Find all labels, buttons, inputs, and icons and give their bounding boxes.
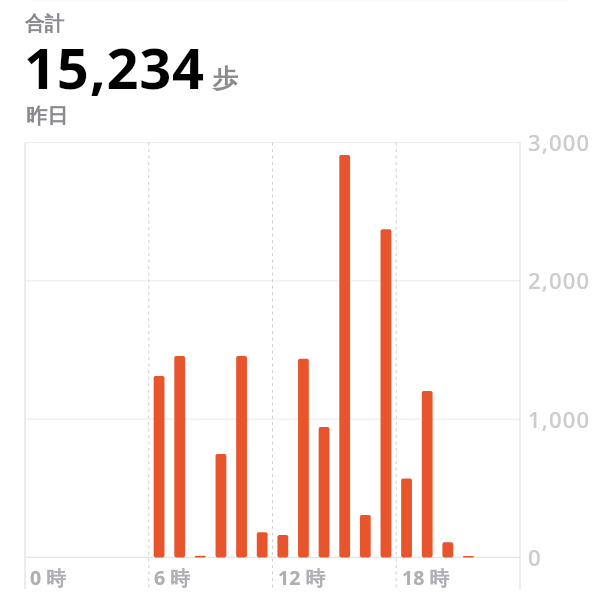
staticText: 0 時 — [30, 564, 66, 591]
staticText: 昨日 — [26, 103, 68, 129]
staticText: 3,000 — [528, 127, 591, 157]
staticText: 15,234 — [24, 29, 205, 105]
staticText: 0 — [528, 542, 542, 572]
staticText: 18 時 — [402, 564, 449, 591]
staticText: 合計 — [25, 11, 64, 36]
button[interactable] — [18, 6, 258, 134]
staticText: 6 時 — [154, 564, 190, 591]
staticText: 2,000 — [528, 265, 591, 295]
staticText: 12 時 — [278, 564, 325, 591]
button[interactable]: Hourly step chart — [25, 142, 520, 556]
staticText: 1,000 — [528, 404, 591, 434]
staticText: 歩 — [213, 63, 238, 94]
